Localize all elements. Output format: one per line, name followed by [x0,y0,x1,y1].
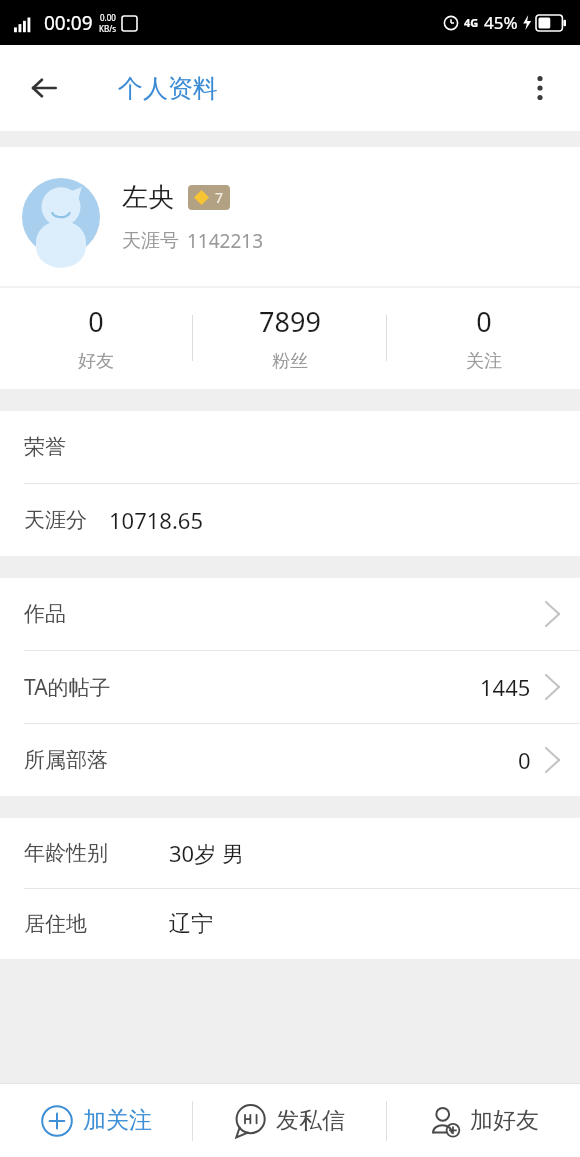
button[interactable]: 7899 [193,287,386,389]
staticText: 0 [88,303,104,340]
staticText: TA的帖子 [24,673,111,702]
button[interactable]: 左央 [0,147,580,287]
button[interactable]: More options [512,60,568,116]
button[interactable]: TA的帖子 [0,651,580,723]
staticText: 左央 [122,181,174,214]
staticText: 粉丝 [272,350,308,373]
staticText: 10718.65 [109,505,203,535]
staticText: KB/s [99,23,116,34]
staticText: 好友 [78,350,114,373]
staticText: 加关注 [83,1106,152,1135]
staticText: 30岁 男 [169,838,244,868]
button[interactable]: 0 [0,287,192,389]
staticText: 1445 [480,672,531,702]
staticText: 所属部落 [24,747,108,773]
staticText: 00:09 [44,10,93,36]
button[interactable]: 加好友 [387,1084,580,1157]
button[interactable]: 0 [387,287,580,389]
button[interactable]: 年龄性别 [0,818,580,888]
staticText: 1142213 [187,228,264,254]
staticText: 7 [215,188,224,207]
staticText: 加好友 [470,1106,539,1135]
button[interactable]: 加关注 [0,1084,192,1157]
button[interactable]: 荣誉 [0,411,580,483]
staticText: 发私信 [276,1106,345,1135]
staticText: 0.00 [100,12,116,23]
staticText: 年龄性别 [24,840,108,866]
button[interactable]: 发私信 [193,1084,386,1157]
staticText: 0 [518,745,531,775]
button[interactable]: Back [14,58,74,118]
button[interactable]: 居住地 [0,889,580,959]
staticText: 个人资料 [118,73,218,104]
staticText: 天涯号 [122,229,179,253]
staticText: 天涯分 [24,507,87,533]
button[interactable]: 所属部落 [0,724,580,796]
staticText: 作品 [24,601,66,627]
staticText: 4G [464,15,479,30]
staticText: 7899 [259,303,321,340]
button[interactable]: 天涯分 [0,484,580,556]
staticText: 荣誉 [24,434,66,460]
staticText: 0 [476,303,492,340]
staticText: 辽宁 [169,910,213,938]
staticText: 关注 [466,350,502,373]
button[interactable]: 作品 [0,578,580,650]
staticText: 45% [484,11,518,34]
staticText: 居住地 [24,911,87,937]
